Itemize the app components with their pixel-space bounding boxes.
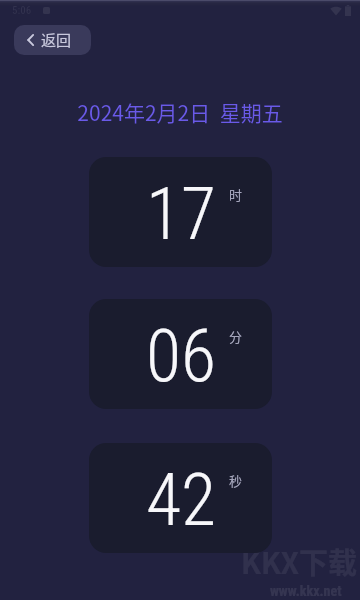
staticText: 2024年2月2日 星期五 — [77, 97, 283, 127]
staticText: 06 — [146, 314, 216, 398]
staticText: 秒 — [229, 471, 243, 490]
button[interactable]: 17 — [89, 157, 272, 267]
staticText: 42 — [146, 458, 216, 542]
button[interactable]: 06 — [89, 299, 272, 409]
staticText: www.kkx.net — [270, 583, 342, 599]
staticText: 返回 — [41, 29, 72, 51]
staticText: 分 — [229, 327, 243, 346]
button[interactable]: 返回 — [14, 25, 91, 55]
staticText: 5:06 — [12, 4, 32, 17]
staticText: KKX下载 — [241, 540, 357, 582]
staticText: 时 — [229, 185, 243, 204]
button[interactable]: 42 — [89, 443, 272, 553]
staticText: 17 — [146, 172, 216, 256]
